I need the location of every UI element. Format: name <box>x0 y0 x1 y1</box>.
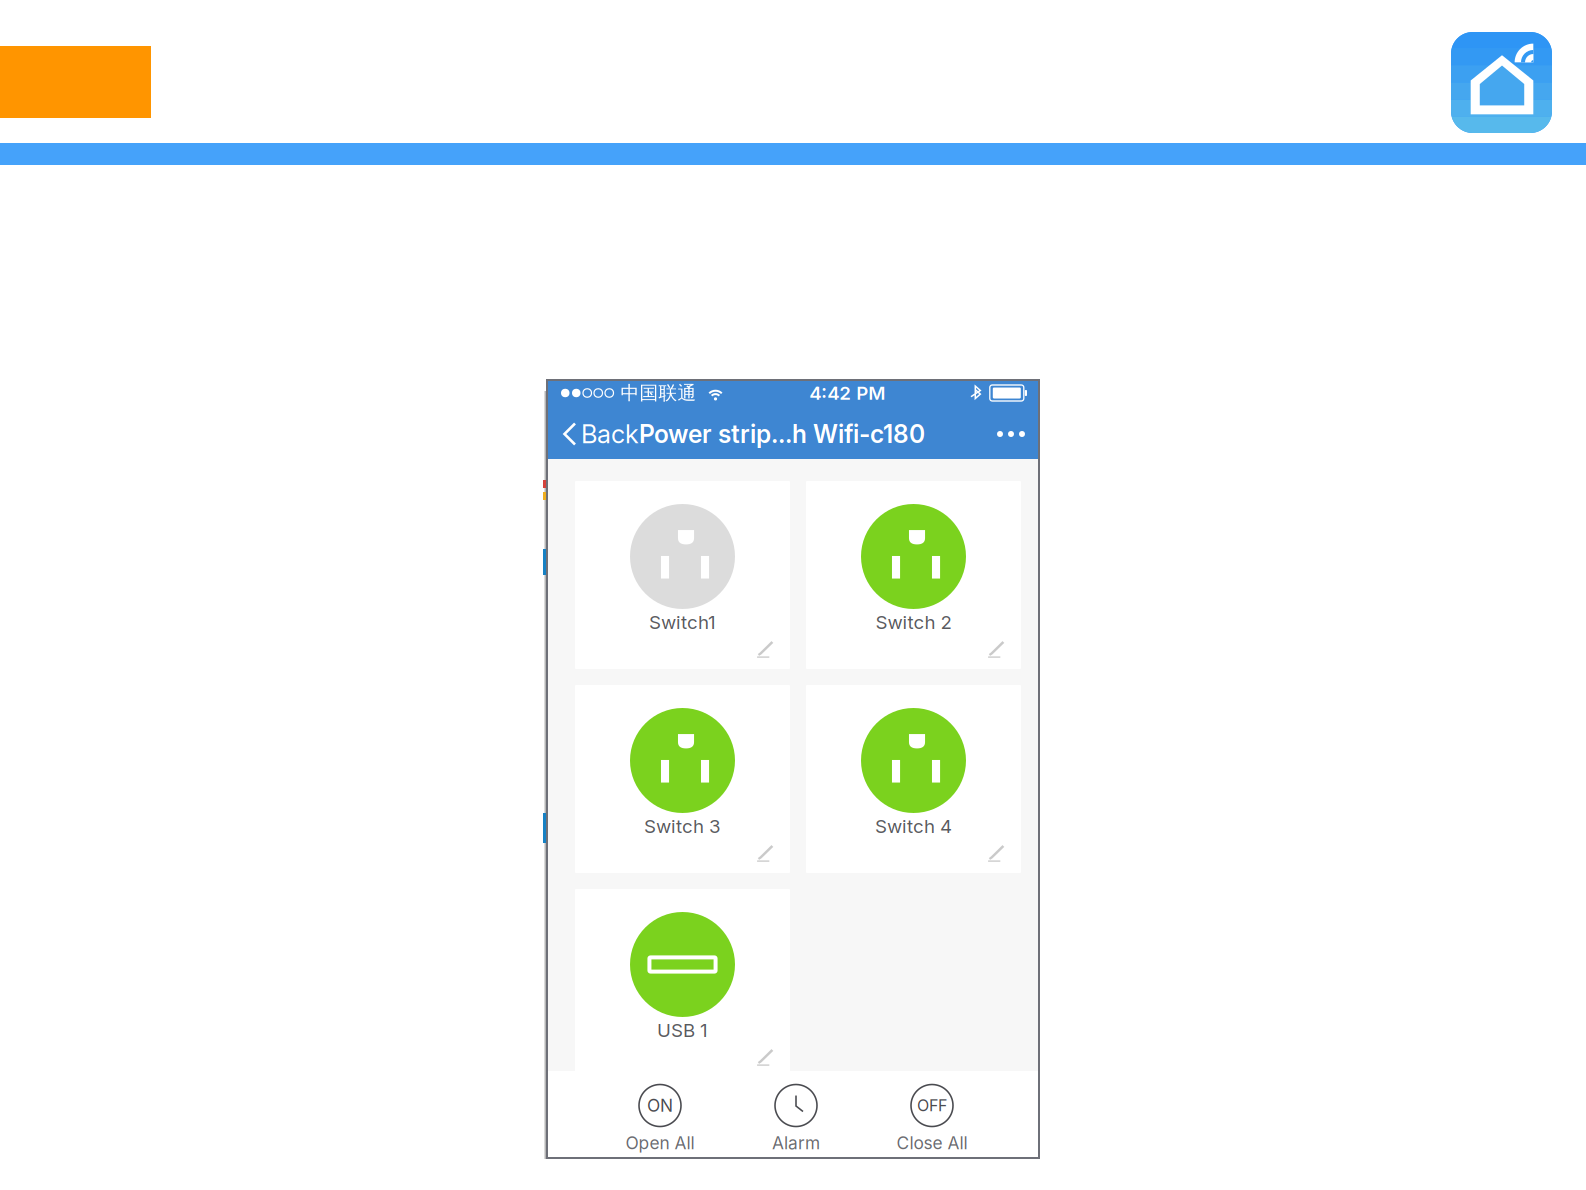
staticText: 4:42 PM <box>809 382 885 404</box>
staticText: ON <box>647 1095 673 1116</box>
staticText: Switch 4 <box>875 815 952 838</box>
button[interactable]: OFF <box>864 1074 1000 1158</box>
button[interactable]: Alarm <box>728 1074 864 1158</box>
staticText: Open All <box>625 1132 694 1153</box>
staticText: 中国联通 <box>620 381 696 405</box>
staticText: Power strip...h Wifi-c180 <box>639 419 925 449</box>
staticText: Alarm <box>772 1132 820 1153</box>
button[interactable]: Back <box>547 406 639 462</box>
button[interactable]: Switch 2 <box>806 481 1021 669</box>
staticText: Close All <box>896 1132 967 1153</box>
button[interactable]: ON <box>592 1074 728 1158</box>
button[interactable]: Switch 3 <box>575 685 790 873</box>
staticText: USB 1 <box>657 1019 708 1042</box>
staticText: Back <box>581 419 639 449</box>
button[interactable]: Switch 4 <box>806 685 1021 873</box>
button[interactable]: More options <box>997 412 1039 456</box>
button[interactable]: USB 1 <box>575 889 790 1077</box>
button[interactable]: Switch1 <box>575 481 790 669</box>
staticText: Switch1 <box>649 611 716 634</box>
staticText: Switch 2 <box>875 611 951 634</box>
staticText: Switch 3 <box>644 815 721 838</box>
staticText: OFF <box>917 1096 947 1115</box>
